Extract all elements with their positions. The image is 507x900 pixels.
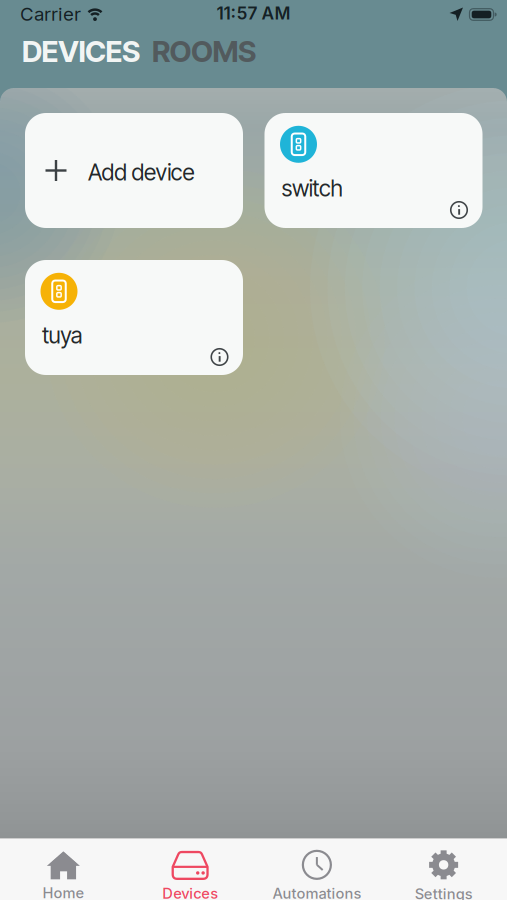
button[interactable]: Device info: [211, 348, 228, 365]
staticText: Add device: [88, 158, 194, 186]
staticText: Devices: [162, 885, 218, 900]
button[interactable]: DEVICES: [22, 33, 140, 69]
staticText: Automations: [272, 885, 361, 900]
staticText: Carrier: [20, 3, 81, 25]
button[interactable]: tuya: [25, 260, 243, 375]
button[interactable]: Settings: [380, 849, 507, 900]
staticText: 11:57 AM: [216, 3, 290, 23]
staticText: Home: [42, 884, 84, 900]
staticText: tuya: [42, 321, 83, 349]
staticText: ROOMS: [152, 33, 256, 69]
button[interactable]: Home: [0, 849, 127, 900]
button[interactable]: switch: [264, 113, 482, 228]
button[interactable]: Add device: [25, 113, 243, 228]
staticText: switch: [281, 174, 342, 202]
button[interactable]: Devices: [127, 849, 254, 900]
button[interactable]: ROOMS: [152, 33, 256, 69]
button[interactable]: Automations: [253, 849, 380, 900]
staticText: DEVICES: [22, 33, 140, 69]
button[interactable]: Device info: [450, 201, 467, 218]
staticText: Settings: [415, 885, 473, 900]
